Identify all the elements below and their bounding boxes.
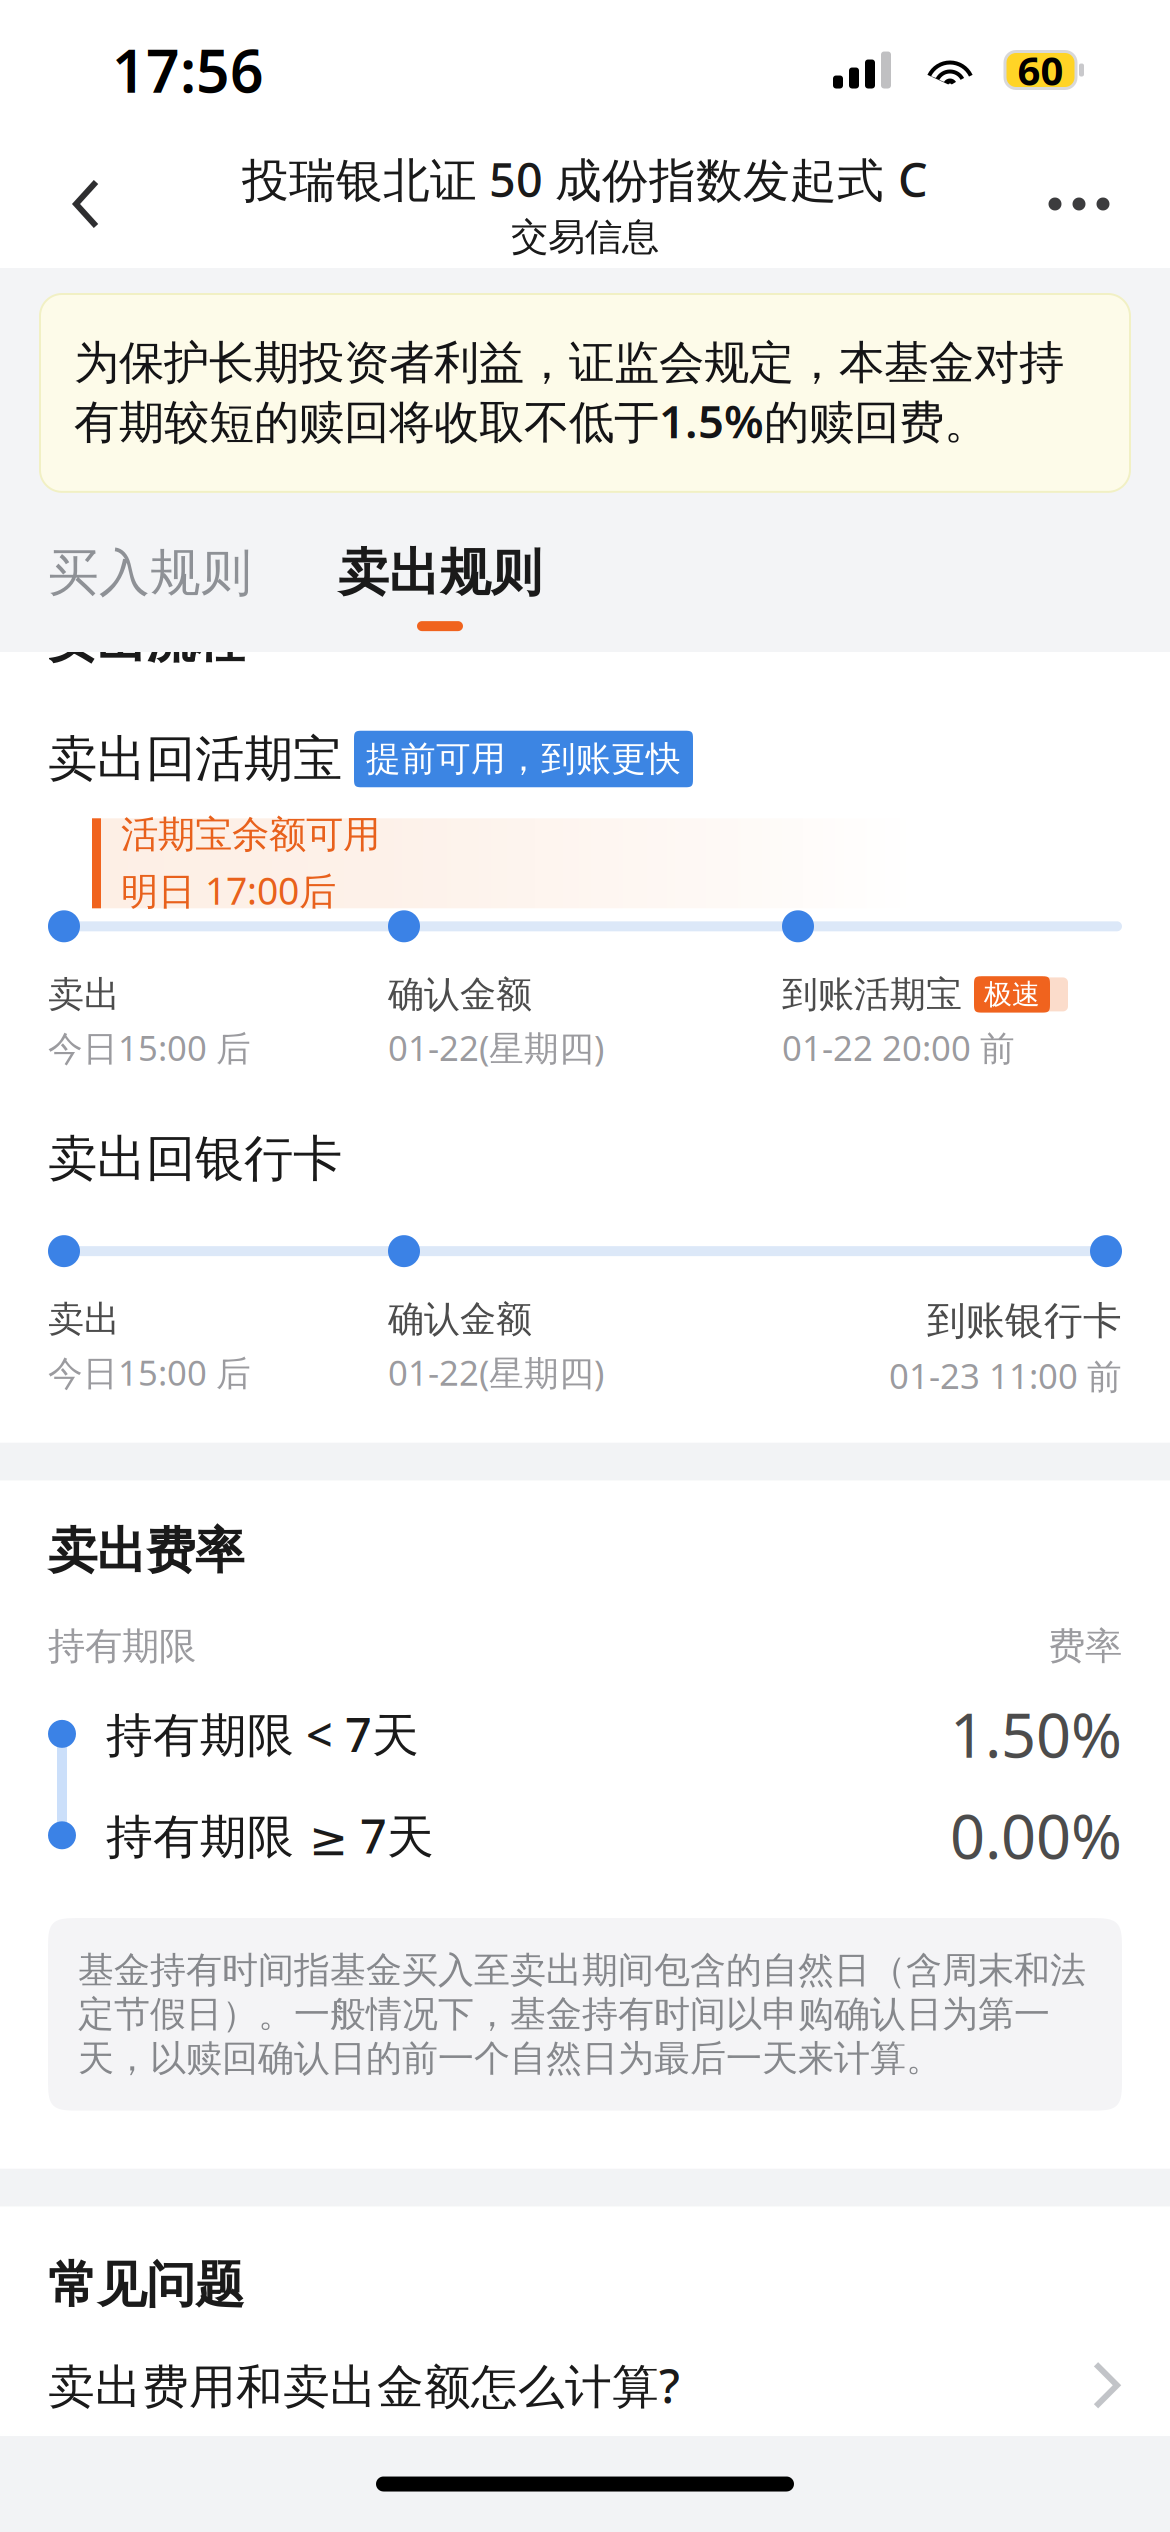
staticText: 基金持有时间指基金买入至卖出期间包含的自然日（含周末和法定节假日）。一般情况下，… (78, 1948, 1086, 2081)
staticText: 01-22 20:00 前 (782, 1024, 1015, 1070)
staticText: 提前可用，到账更快 (366, 738, 681, 780)
staticText: 交易信息 (511, 214, 659, 260)
staticText: 确认金额 (388, 972, 532, 1016)
staticText: 今日15:00 后 (48, 1349, 251, 1395)
staticText: 60 (1017, 43, 1063, 96)
staticText: 1.50% (950, 1693, 1122, 1774)
button[interactable]: 买入规则 (48, 542, 252, 631)
staticText: 费率 (1048, 1623, 1122, 1669)
staticText: 卖出费用和卖出金额怎么计算? (48, 2354, 680, 2416)
staticText: 常见问题 (48, 2255, 244, 2315)
staticText: 投瑞银北证 50 成份指数发起式 C (242, 148, 928, 210)
staticText: 活期宝余额可用 (121, 812, 380, 857)
staticText: 卖出规则 (338, 542, 542, 604)
button[interactable]: More (1024, 149, 1134, 259)
staticText: 卖出回活期宝 (48, 729, 342, 789)
button[interactable]: Back (36, 149, 136, 259)
staticText: 持有期限 < 7天 (106, 1703, 419, 1765)
button[interactable]: 卖出费用和卖出金额怎么计算? (48, 2337, 1122, 2433)
button[interactable]: 卖出规则 (338, 542, 542, 631)
staticText: 卖出费率 (48, 1521, 244, 1581)
staticText: 极速 (984, 977, 1040, 1012)
staticText: 17:56 (112, 31, 264, 109)
staticText: 为保护长期投资者利益，证监会规定，本基金对持有期较短的赎回将收取不低于1.5%的… (74, 335, 1064, 451)
staticText: 到账银行卡 (927, 1297, 1122, 1345)
staticText: 确认金额 (388, 1297, 532, 1341)
staticText: 卖出回银行卡 (48, 1129, 342, 1189)
staticText: 到账活期宝 (782, 972, 962, 1016)
staticText: 卖出 (48, 972, 120, 1016)
staticText: 01-22(星期四) (388, 1024, 604, 1070)
staticText: 0.00% (950, 1795, 1122, 1876)
staticText: 买入规则 (48, 542, 252, 604)
staticText: 今日15:00 后 (48, 1024, 251, 1070)
staticText: 01-22(星期四) (388, 1349, 604, 1395)
staticText: 持有期限 ≥ 7天 (106, 1804, 434, 1866)
staticText: 01-23 11:00 前 (889, 1353, 1122, 1399)
staticText: 卖出流程 (48, 610, 244, 671)
staticText: 持有期限 (48, 1623, 196, 1669)
staticText: 卖出 (48, 1297, 120, 1341)
staticText: 明日 17:00后 (121, 865, 336, 915)
